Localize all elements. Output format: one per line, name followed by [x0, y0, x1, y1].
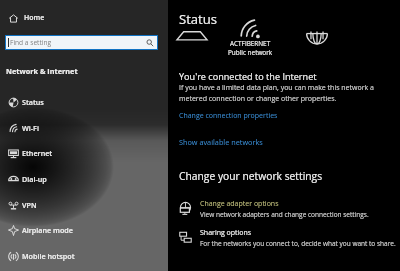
button[interactable]: Change connection properties — [179, 111, 278, 121]
staticText: Home — [24, 13, 45, 23]
staticText: VPN — [22, 200, 37, 210]
button[interactable]: Find a setting — [5, 35, 158, 50]
button[interactable]: Show available networks — [179, 137, 263, 147]
staticText: For the networks you connect to, decide … — [200, 239, 396, 248]
staticText: Network & Internet — [6, 66, 78, 76]
staticText: Change your network settings — [179, 169, 323, 183]
staticText: Dial-up — [22, 174, 47, 184]
button[interactable]: Dial-up — [0, 166, 168, 192]
button[interactable]: Ethernet — [0, 140, 168, 166]
staticText: Status — [179, 10, 218, 28]
staticText: Change adapter options — [200, 199, 279, 209]
button[interactable]: Status — [0, 89, 168, 115]
staticText: Public network — [228, 48, 273, 57]
staticText: Ethernet — [22, 148, 53, 158]
staticText: You're connected to the Internet — [179, 70, 317, 82]
staticText: View network adapters and change connect… — [200, 210, 369, 219]
staticText: Sharing options — [200, 228, 252, 238]
button[interactable]: Mobile hotspot — [0, 243, 168, 269]
button[interactable]: Home — [0, 9, 168, 27]
staticText: Status — [22, 97, 44, 107]
button[interactable]: VPN — [0, 192, 168, 218]
staticText: ACTFIBERNET — [230, 39, 271, 48]
button[interactable]: Sharing options — [168, 228, 400, 252]
button[interactable]: Change adapter options — [168, 199, 400, 223]
staticText: Wi-Fi — [22, 123, 39, 133]
staticText: Find a setting — [10, 38, 52, 47]
staticText: If you have a limited data plan, you can… — [179, 83, 374, 103]
staticText: Airplane mode — [22, 225, 73, 235]
button[interactable]: Wi-Fi — [0, 115, 168, 141]
button[interactable]: Airplane mode — [0, 217, 168, 243]
staticText: Mobile hotspot — [22, 251, 75, 261]
